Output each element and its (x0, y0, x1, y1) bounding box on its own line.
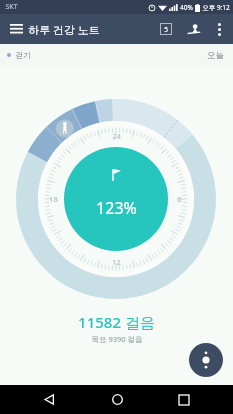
button[interactable]: Location (183, 18, 205, 40)
staticText: 24 (112, 131, 121, 141)
staticText: 오후 9:12 (202, 3, 230, 12)
staticText: 하루 건강 노트 (28, 22, 100, 37)
staticText: 123% (96, 197, 137, 219)
staticText: 12 (112, 257, 121, 267)
staticText: 18 (49, 194, 58, 204)
staticText: 걷기 (15, 50, 31, 60)
staticText: 11582 걸음 (78, 312, 155, 332)
button[interactable]: Menu (6, 19, 26, 39)
button[interactable]: Calendar (155, 18, 177, 40)
staticText: 5 (164, 25, 168, 34)
staticText: 6 (177, 194, 182, 204)
button[interactable]: 오늘 (207, 50, 224, 61)
staticText: 목표 9390 걸음 (91, 334, 143, 344)
button[interactable]: Back (31, 385, 67, 414)
staticText: 40% (180, 3, 193, 12)
button[interactable]: 걷기 (7, 50, 31, 60)
button[interactable]: Home (99, 385, 135, 414)
button[interactable]: More actions (189, 343, 223, 377)
button[interactable]: Recent apps (166, 385, 202, 414)
button[interactable]: More options (209, 19, 229, 39)
staticText: SKT (5, 2, 18, 12)
